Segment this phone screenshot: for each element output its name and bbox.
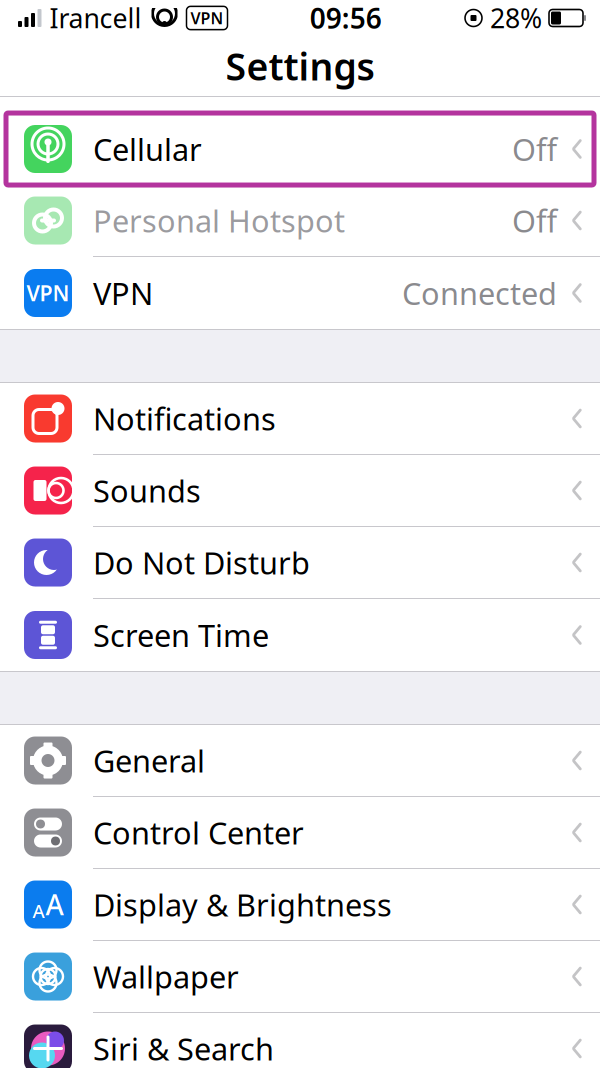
staticText: Siri & Search	[93, 1028, 274, 1068]
button[interactable]: A	[0, 869, 600, 941]
button[interactable]: Siri & Search	[0, 1013, 600, 1068]
staticText: Irancell	[49, 0, 141, 36]
staticText: VPN	[93, 273, 153, 313]
staticText: Sounds	[93, 470, 201, 511]
button[interactable]: Cellular	[0, 113, 600, 185]
staticText: A	[45, 886, 63, 923]
staticText: Personal Hotspot	[93, 200, 345, 241]
button[interactable]: Wallpaper	[0, 941, 600, 1013]
staticText: Settings	[225, 41, 374, 91]
button[interactable]: Control Center	[0, 797, 600, 869]
staticText: VPN	[26, 279, 69, 307]
button[interactable]: Sounds	[0, 455, 600, 527]
staticText: Control Center	[93, 812, 304, 853]
staticText: A	[32, 898, 44, 923]
staticText: 09:56	[310, 0, 382, 37]
staticText: Off	[512, 129, 557, 169]
staticText: VPN	[190, 7, 223, 29]
staticText: General	[93, 740, 205, 781]
button[interactable]: Screen Time	[0, 599, 600, 671]
staticText: Cellular	[93, 129, 202, 169]
staticText: Connected	[402, 273, 557, 313]
staticText: Notifications	[93, 398, 276, 439]
button[interactable]: Notifications	[0, 383, 600, 455]
button[interactable]: Do Not Disturb	[0, 527, 600, 599]
staticText: Wallpaper	[93, 956, 239, 997]
staticText: Do Not Disturb	[93, 542, 310, 583]
staticText: Display & Brightness	[93, 884, 392, 925]
button[interactable]: VPN	[0, 257, 600, 329]
button[interactable]: General	[0, 725, 600, 797]
button[interactable]: Personal Hotspot	[0, 185, 600, 257]
staticText: Off	[512, 200, 557, 241]
staticText: 28%	[490, 0, 542, 36]
staticText: Screen Time	[93, 615, 269, 655]
